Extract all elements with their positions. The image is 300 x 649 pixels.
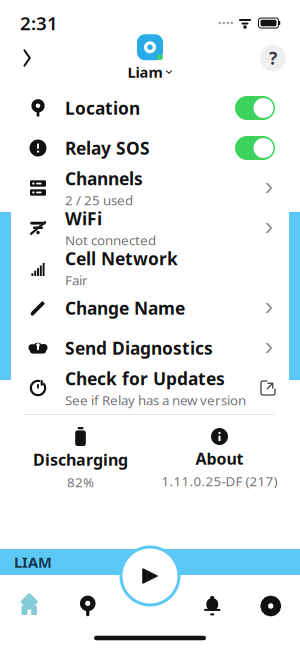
staticText: 1.11.0.25-DF (217) xyxy=(161,472,277,490)
staticText: Check for Updates xyxy=(65,367,225,390)
button[interactable]: Back xyxy=(10,41,44,75)
button[interactable]: WiFi xyxy=(11,208,289,248)
staticText: Not connected xyxy=(65,231,156,249)
button[interactable]: Map xyxy=(58,596,117,616)
button[interactable]: Settings xyxy=(241,595,300,616)
staticText: WiFi xyxy=(65,207,102,230)
button[interactable]: Help xyxy=(256,41,290,75)
staticText: Relay SOS xyxy=(65,136,150,159)
button[interactable]: Relay SOS toggle xyxy=(235,136,275,160)
button[interactable]: Cell Network xyxy=(11,248,289,288)
staticText: See if Relay has a new version xyxy=(65,391,246,409)
button[interactable]: Location xyxy=(11,88,289,128)
staticText: 2 / 25 used xyxy=(65,191,133,209)
button[interactable]: Discharging xyxy=(11,427,150,491)
button[interactable]: Relay SOS xyxy=(11,128,289,168)
staticText: About xyxy=(195,448,243,469)
staticText: 2:31 xyxy=(20,11,58,35)
button[interactable]: Channels xyxy=(11,168,289,208)
staticText: Channels xyxy=(65,167,143,190)
button[interactable]: Location toggle xyxy=(235,96,275,120)
staticText: Change Name xyxy=(65,296,185,319)
staticText: Cell Network xyxy=(65,247,178,270)
button[interactable]: Alerts xyxy=(183,596,241,615)
staticText: LIAM xyxy=(14,552,52,572)
staticText: Liam xyxy=(127,62,162,82)
button[interactable]: Send Diagnostics xyxy=(11,328,289,368)
button[interactable]: Talk xyxy=(119,545,181,607)
staticText: Fair xyxy=(65,271,88,289)
button[interactable]: Check for Updates xyxy=(11,368,289,408)
button[interactable]: Home xyxy=(0,595,58,616)
staticText: Send Diagnostics xyxy=(65,336,213,359)
staticText: ? xyxy=(269,46,277,69)
staticText: 82% xyxy=(67,473,94,491)
staticText: Discharging xyxy=(33,449,128,470)
button[interactable]: About xyxy=(150,428,289,490)
staticText: Location xyxy=(65,96,140,119)
button[interactable]: Change Name xyxy=(11,288,289,328)
